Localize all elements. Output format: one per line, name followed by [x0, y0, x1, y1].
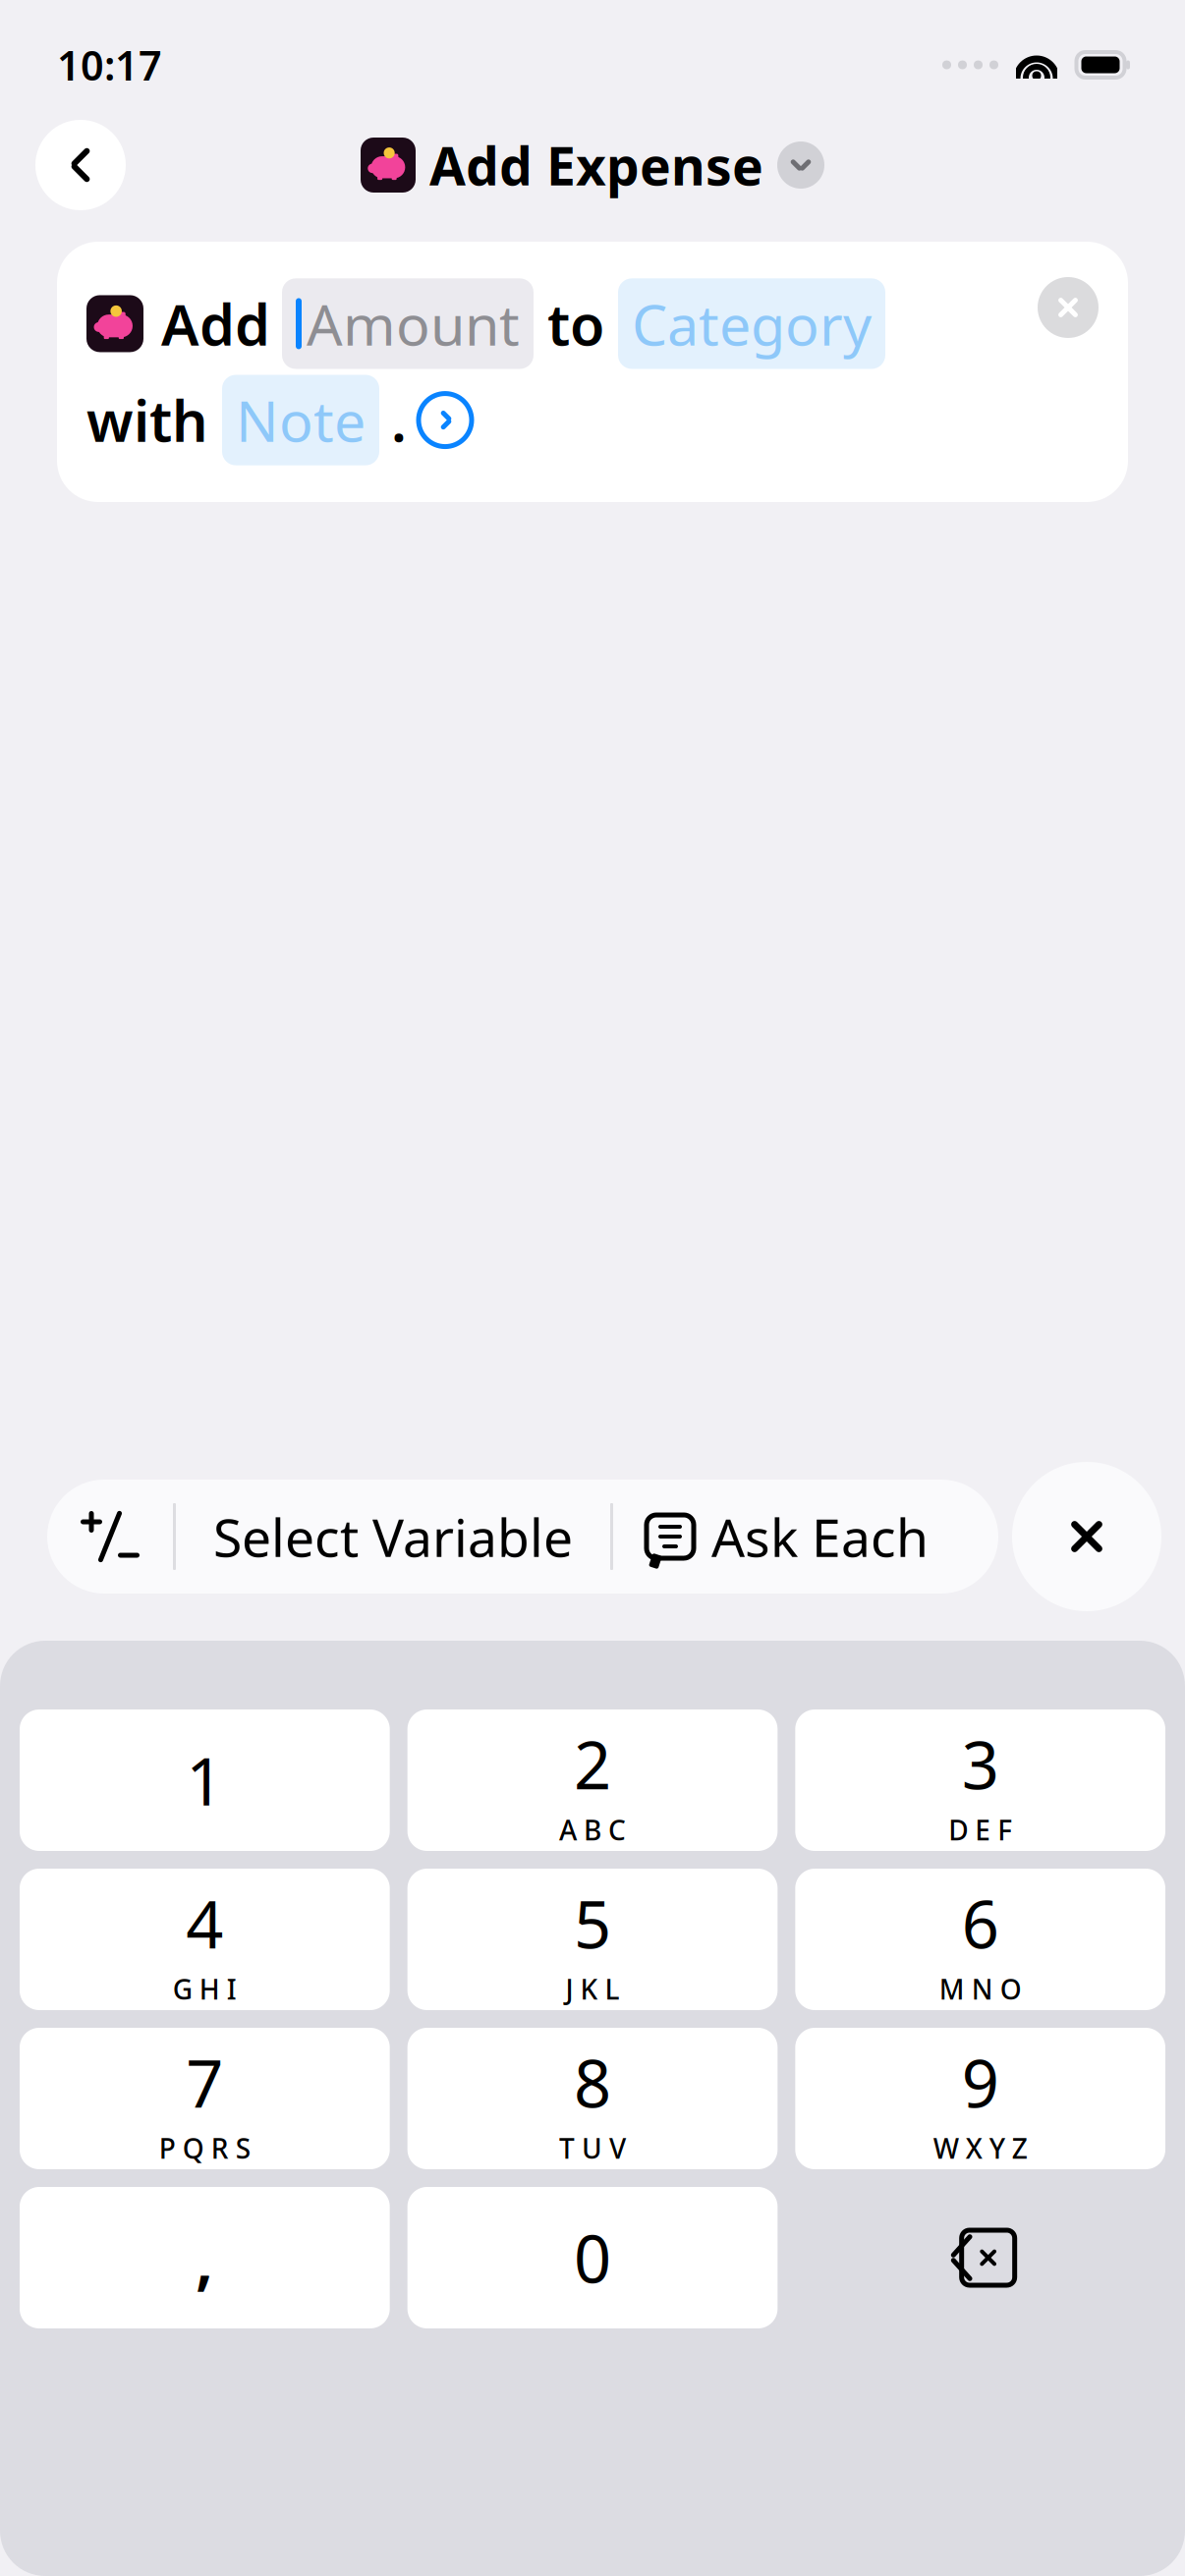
staticText: Add Expense: [429, 130, 763, 200]
staticText: J K L: [565, 1971, 620, 2007]
staticText: Select Variable: [213, 1502, 573, 1571]
button[interactable]: Category: [618, 278, 885, 369]
button[interactable]: Insert math operation: [47, 1480, 173, 1594]
button[interactable]: 6: [795, 1869, 1165, 2010]
staticText: 3: [962, 1720, 999, 1807]
staticText: 10:17: [57, 38, 162, 92]
button[interactable]: Show more options: [419, 394, 472, 447]
staticText: G H I: [173, 1971, 237, 2007]
staticText: with: [86, 383, 208, 457]
staticText: Note: [236, 383, 366, 457]
staticText: 0: [574, 2214, 611, 2301]
button[interactable]: 1: [20, 1709, 390, 1851]
button[interactable]: 7: [20, 2028, 390, 2169]
staticText: M N O: [939, 1971, 1022, 2007]
staticText: Ask Each: [711, 1502, 929, 1571]
staticText: W X Y Z: [933, 2130, 1027, 2166]
staticText: to: [547, 286, 604, 361]
button[interactable]: 5: [407, 1869, 778, 2010]
button[interactable]: Select Variable: [176, 1480, 610, 1594]
button[interactable]: 4: [20, 1869, 390, 2010]
staticText: 6: [962, 1880, 999, 1966]
button[interactable]: 3: [795, 1709, 1165, 1851]
staticText: 8: [574, 2039, 611, 2126]
staticText: 1: [186, 1737, 223, 1824]
staticText: P Q R S: [159, 2130, 250, 2166]
staticText: 2: [574, 1720, 611, 1807]
button[interactable]: Back: [35, 120, 126, 210]
button[interactable]: Shortcut options: [777, 141, 824, 189]
button[interactable]: 8: [407, 2028, 778, 2169]
button[interactable]: Delete: [795, 2187, 1165, 2328]
button[interactable]: Comma: [20, 2187, 390, 2328]
staticText: 7: [186, 2039, 223, 2126]
button[interactable]: Amount: [282, 278, 534, 369]
button[interactable]: Dismiss keyboard: [1012, 1462, 1161, 1611]
button[interactable]: 0: [407, 2187, 778, 2328]
staticText: ,: [195, 2214, 214, 2301]
staticText: Category: [632, 286, 872, 361]
button[interactable]: Remove action: [1038, 277, 1099, 338]
staticText: T U V: [559, 2130, 626, 2166]
staticText: 5: [574, 1880, 611, 1966]
staticText: 9: [962, 2039, 999, 2126]
staticText: 4: [186, 1880, 223, 1966]
button[interactable]: 9: [795, 2028, 1165, 2169]
staticText: .: [391, 383, 407, 457]
staticText: Amount: [307, 286, 520, 361]
staticText: A B C: [559, 1811, 626, 1848]
button[interactable]: Note: [222, 375, 379, 465]
button[interactable]: 2: [407, 1709, 778, 1851]
staticText: D E F: [948, 1811, 1012, 1848]
staticText: Add: [161, 286, 270, 361]
button[interactable]: Ask Each: [613, 1480, 960, 1594]
